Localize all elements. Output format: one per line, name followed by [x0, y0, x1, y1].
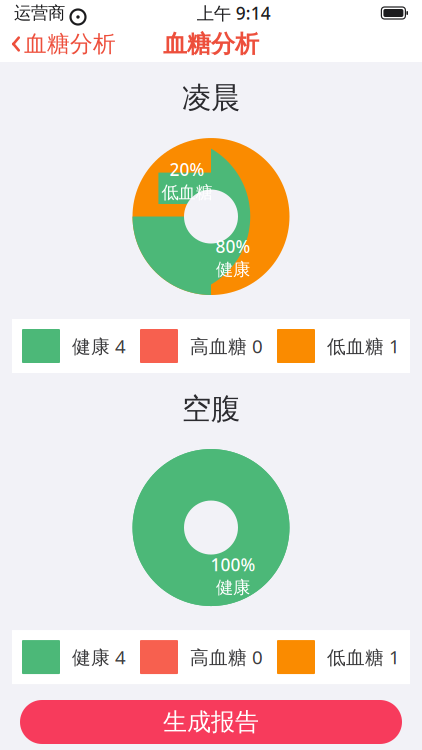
staticText: 凌晨 — [182, 80, 240, 116]
staticText: 生成报告 — [163, 707, 259, 737]
staticText: 低血糖 1 — [327, 645, 400, 669]
staticText: 20% — [169, 158, 204, 181]
staticText: 运营商 — [14, 2, 65, 24]
staticText: 高血糖 0 — [190, 645, 263, 669]
staticText: 80% — [215, 235, 250, 258]
staticText: 100% — [210, 553, 255, 576]
staticText: 健康 4 — [72, 645, 126, 669]
staticText: 低血糖 — [161, 182, 212, 203]
staticText: 低血糖 1 — [327, 334, 400, 358]
staticText: 血糖分析 — [163, 29, 259, 59]
staticText: 健康 — [216, 259, 250, 280]
staticText: 健康 4 — [72, 334, 126, 358]
staticText: 血糖分析 — [24, 30, 116, 58]
staticText: 空腹 — [182, 391, 240, 427]
staticText: 健康 — [216, 577, 250, 598]
staticText: 高血糖 0 — [190, 334, 263, 358]
button[interactable]: 血糖分析 — [0, 24, 116, 64]
staticText: 上午 9:14 — [197, 1, 271, 24]
button[interactable]: 生成报告 — [20, 700, 402, 744]
